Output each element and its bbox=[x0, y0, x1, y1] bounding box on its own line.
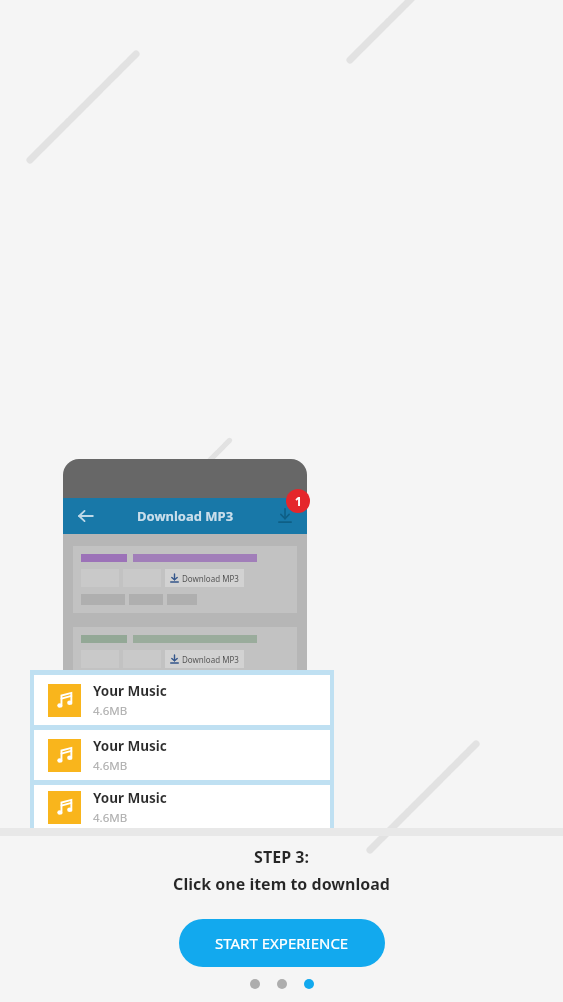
button[interactable]: Your Music bbox=[34, 675, 330, 725]
staticText: 4.6MB bbox=[93, 758, 128, 774]
staticText: 1 bbox=[295, 493, 302, 509]
staticText: Download MP3 bbox=[182, 654, 239, 665]
button[interactable]: Back bbox=[77, 507, 95, 525]
button[interactable]: START EXPERIENCE bbox=[179, 919, 385, 967]
button[interactable]: Your Music bbox=[34, 730, 330, 780]
staticText: Your Music bbox=[93, 789, 167, 807]
staticText: Your Music bbox=[93, 682, 167, 700]
staticText: Download MP3 bbox=[137, 507, 234, 525]
button[interactable]: Download MP3 bbox=[170, 650, 239, 668]
button[interactable]: Downloads bbox=[277, 508, 293, 524]
staticText: Download MP3 bbox=[182, 573, 239, 584]
button[interactable]: Download MP3 bbox=[170, 569, 239, 587]
button[interactable]: Your Music bbox=[34, 785, 330, 830]
staticText: STEP 3: bbox=[254, 846, 309, 868]
staticText: START EXPERIENCE bbox=[215, 933, 349, 953]
staticText: 4.6MB bbox=[93, 810, 128, 826]
staticText: 4.6MB bbox=[93, 703, 128, 719]
staticText: Your Music bbox=[93, 737, 167, 755]
staticText: Click one item to download bbox=[173, 873, 390, 895]
